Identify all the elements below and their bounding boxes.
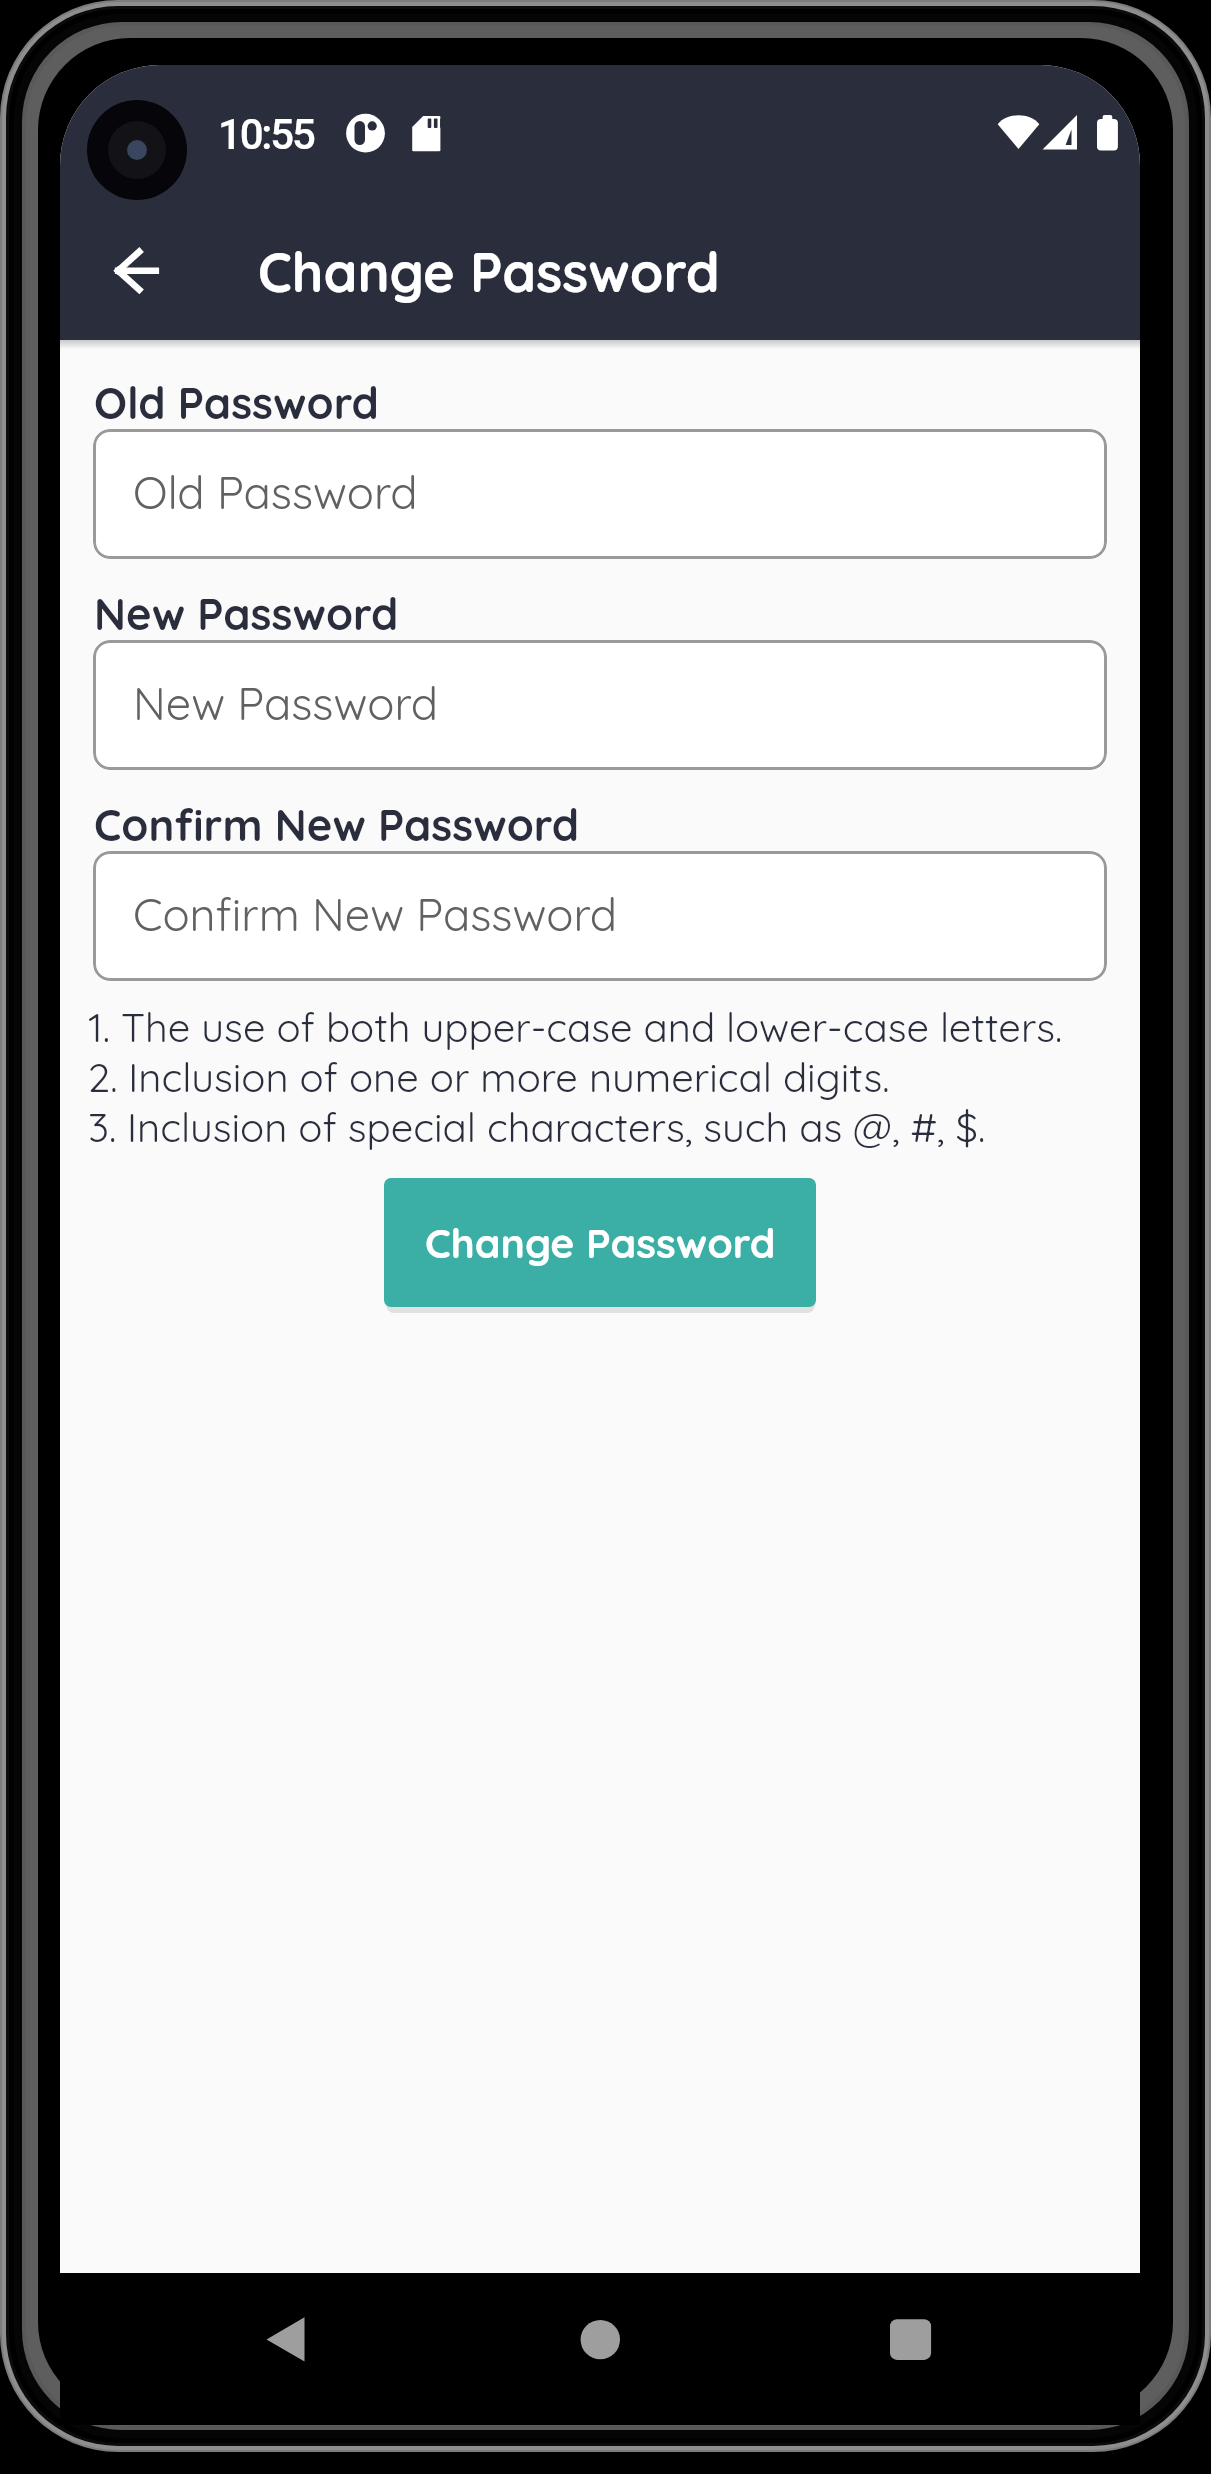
button[interactable]: Back	[240, 2295, 334, 2389]
staticText: New Password	[94, 586, 399, 640]
button[interactable]: Home	[553, 2295, 647, 2389]
button[interactable]: Change Password	[384, 1178, 816, 1307]
staticText: Confirm New Password	[94, 797, 580, 851]
button[interactable]: Old Password	[93, 429, 1107, 559]
button[interactable]: Back	[78, 206, 198, 326]
staticText: Old Password	[94, 375, 379, 429]
button[interactable]: Recent apps	[863, 2295, 957, 2389]
staticText: 10:55	[218, 110, 314, 159]
button[interactable]: New Password	[93, 640, 1107, 770]
button[interactable]: Confirm New Password	[93, 851, 1107, 981]
staticText: Old Password	[133, 464, 418, 520]
staticText: 1. The use of both upper-case and lower-…	[88, 1002, 1063, 1152]
staticText: New Password	[133, 675, 439, 731]
staticText: Change Password	[425, 1217, 776, 1268]
staticText: Change Password	[258, 238, 720, 306]
staticText: Confirm New Password	[133, 886, 618, 942]
